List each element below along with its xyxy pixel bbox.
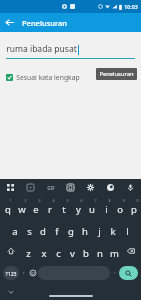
button[interactable]: b bbox=[79, 240, 93, 262]
staticText: ?123 bbox=[5, 270, 17, 277]
staticText: 5 bbox=[66, 198, 69, 203]
staticText: t bbox=[62, 203, 66, 216]
staticText: 9 bbox=[122, 198, 125, 203]
staticText: 0 bbox=[136, 198, 139, 203]
staticText: r bbox=[48, 203, 52, 216]
button[interactable]: s bbox=[22, 218, 36, 240]
staticText: g bbox=[68, 225, 74, 238]
staticText: Penelusuran bbox=[22, 18, 67, 28]
staticText: o bbox=[117, 203, 123, 216]
button[interactable]: . bbox=[110, 264, 119, 282]
staticText: l bbox=[126, 225, 129, 238]
staticText: 1 bbox=[9, 198, 12, 203]
staticText: e bbox=[33, 203, 39, 216]
button[interactable]: Sesuai kata lengkap bbox=[6, 73, 80, 82]
button[interactable]: Emoji bbox=[28, 264, 38, 282]
staticText: b bbox=[83, 247, 89, 260]
staticText: w bbox=[18, 203, 26, 216]
button[interactable]: v bbox=[65, 240, 79, 262]
button[interactable]: 2 bbox=[15, 196, 29, 218]
staticText: a bbox=[12, 225, 18, 238]
staticText: 6 bbox=[80, 198, 83, 203]
staticText: , bbox=[23, 266, 25, 276]
button[interactable]: l bbox=[120, 218, 134, 240]
staticText: 4 bbox=[52, 198, 55, 203]
button[interactable]: , bbox=[19, 264, 28, 282]
staticText: m bbox=[110, 247, 119, 260]
button[interactable]: Clipboard bbox=[64, 181, 77, 194]
staticText: u bbox=[89, 203, 95, 216]
staticText: ruma ibada pusat bbox=[6, 43, 77, 55]
staticText: v bbox=[70, 247, 75, 260]
button[interactable]: 7 bbox=[85, 196, 99, 218]
staticText: . bbox=[114, 266, 116, 276]
button[interactable]: Themes bbox=[104, 181, 117, 194]
staticText: x bbox=[41, 247, 47, 260]
staticText: p bbox=[131, 203, 137, 216]
button[interactable]: 9 bbox=[113, 196, 127, 218]
button[interactable]: d bbox=[36, 218, 50, 240]
button[interactable]: 4 bbox=[43, 196, 57, 218]
button[interactable]: Stickers bbox=[24, 181, 37, 194]
staticText: Penelusuran bbox=[99, 70, 134, 78]
staticText: 2 bbox=[24, 198, 27, 203]
staticText: f bbox=[55, 225, 59, 238]
button[interactable]: Space bbox=[38, 266, 110, 280]
button[interactable]: 1 bbox=[0, 196, 15, 218]
staticText: Sesuai kata lengkap bbox=[16, 73, 80, 82]
button[interactable]: a bbox=[7, 218, 22, 240]
button[interactable]: Keyboard apps bbox=[4, 181, 17, 194]
button[interactable]: z bbox=[21, 240, 36, 262]
staticText: 8 bbox=[108, 198, 111, 203]
staticText: 10:03 bbox=[124, 3, 138, 10]
button[interactable]: 8 bbox=[99, 196, 113, 218]
button[interactable]: k bbox=[106, 218, 120, 240]
button[interactable]: f bbox=[50, 218, 64, 240]
button[interactable]: GIF bbox=[44, 181, 57, 194]
button[interactable]: Shift bbox=[0, 240, 21, 262]
button[interactable]: h bbox=[78, 218, 92, 240]
staticText: y bbox=[76, 203, 81, 216]
staticText: h bbox=[82, 225, 88, 238]
button[interactable]: Voice input bbox=[124, 181, 137, 194]
staticText: s bbox=[27, 225, 32, 238]
button[interactable]: m bbox=[107, 240, 121, 262]
staticText: n bbox=[97, 247, 103, 260]
button[interactable]: 5 bbox=[57, 196, 71, 218]
button[interactable]: g bbox=[64, 218, 78, 240]
button[interactable]: c bbox=[51, 240, 65, 262]
button[interactable]: x bbox=[36, 240, 51, 262]
button[interactable]: 0 bbox=[127, 196, 141, 218]
button[interactable]: Search bbox=[119, 266, 138, 280]
staticText: c bbox=[56, 247, 61, 260]
button[interactable]: 6 bbox=[71, 196, 85, 218]
staticText: k bbox=[110, 225, 116, 238]
button[interactable]: j bbox=[92, 218, 106, 240]
button[interactable]: ?123 bbox=[3, 266, 19, 280]
staticText: z bbox=[26, 247, 31, 260]
button[interactable]: Hide keyboard bbox=[6, 287, 16, 297]
staticText: j bbox=[98, 225, 101, 238]
staticText: i bbox=[105, 203, 108, 216]
staticText: 3 bbox=[38, 198, 41, 203]
staticText: q bbox=[5, 203, 11, 216]
staticText: d bbox=[40, 225, 46, 238]
button[interactable]: Back bbox=[0, 13, 19, 32]
button[interactable]: n bbox=[93, 240, 107, 262]
button[interactable]: 3 bbox=[29, 196, 43, 218]
button[interactable]: Settings bbox=[84, 181, 97, 194]
button[interactable]: Backspace bbox=[121, 240, 141, 262]
staticText: 7 bbox=[94, 198, 97, 203]
staticText: GIF bbox=[47, 185, 55, 191]
